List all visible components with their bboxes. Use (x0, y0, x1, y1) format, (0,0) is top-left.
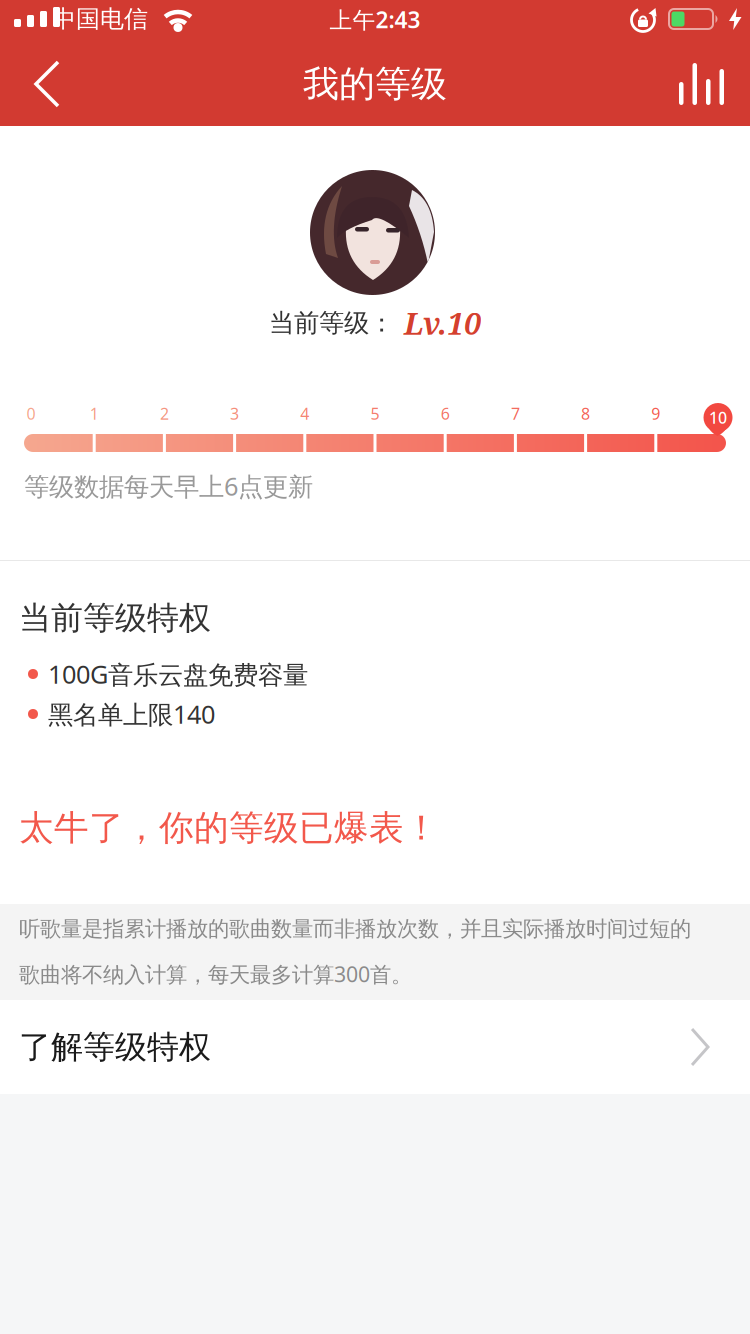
staticText: 歌曲将不纳入计算，每天最多计算300首。 (19, 960, 412, 988)
staticText: 太牛了，你的等级已爆表！ (19, 807, 439, 849)
staticText: 1 (90, 403, 99, 424)
staticText: 中国电信 (52, 4, 148, 34)
staticText: 当前等级： (269, 307, 394, 338)
staticText: 等级数据每天早上6点更新 (24, 469, 313, 503)
staticText: 黑名单上限140 (48, 697, 215, 731)
staticText: 100G音乐云盘免费容量 (48, 657, 308, 691)
staticText: 当前等级特权 (19, 598, 211, 638)
staticText: 7 (511, 403, 520, 424)
staticText: 4 (300, 403, 309, 424)
button[interactable]: Back (16, 42, 80, 126)
staticText: 2 (160, 403, 169, 424)
staticText: 3 (230, 403, 239, 424)
staticText: 9 (651, 403, 660, 424)
staticText: 上午2:43 (329, 4, 420, 34)
staticText: 10 (709, 407, 727, 428)
staticText: 了解等级特权 (19, 1027, 211, 1067)
button[interactable]: Level statistics (661, 45, 742, 123)
button[interactable]: 了解等级特权 (0, 1000, 750, 1094)
staticText: 5 (370, 403, 379, 424)
staticText: 6 (441, 403, 450, 424)
staticText: Lv.10 (404, 303, 481, 343)
staticText: 8 (581, 403, 590, 424)
staticText: 我的等级 (303, 62, 447, 106)
staticText: 听歌量是指累计播放的歌曲数量而非播放次数，并且实际播放时间过短的 (19, 916, 691, 942)
staticText: 0 (26, 403, 35, 424)
